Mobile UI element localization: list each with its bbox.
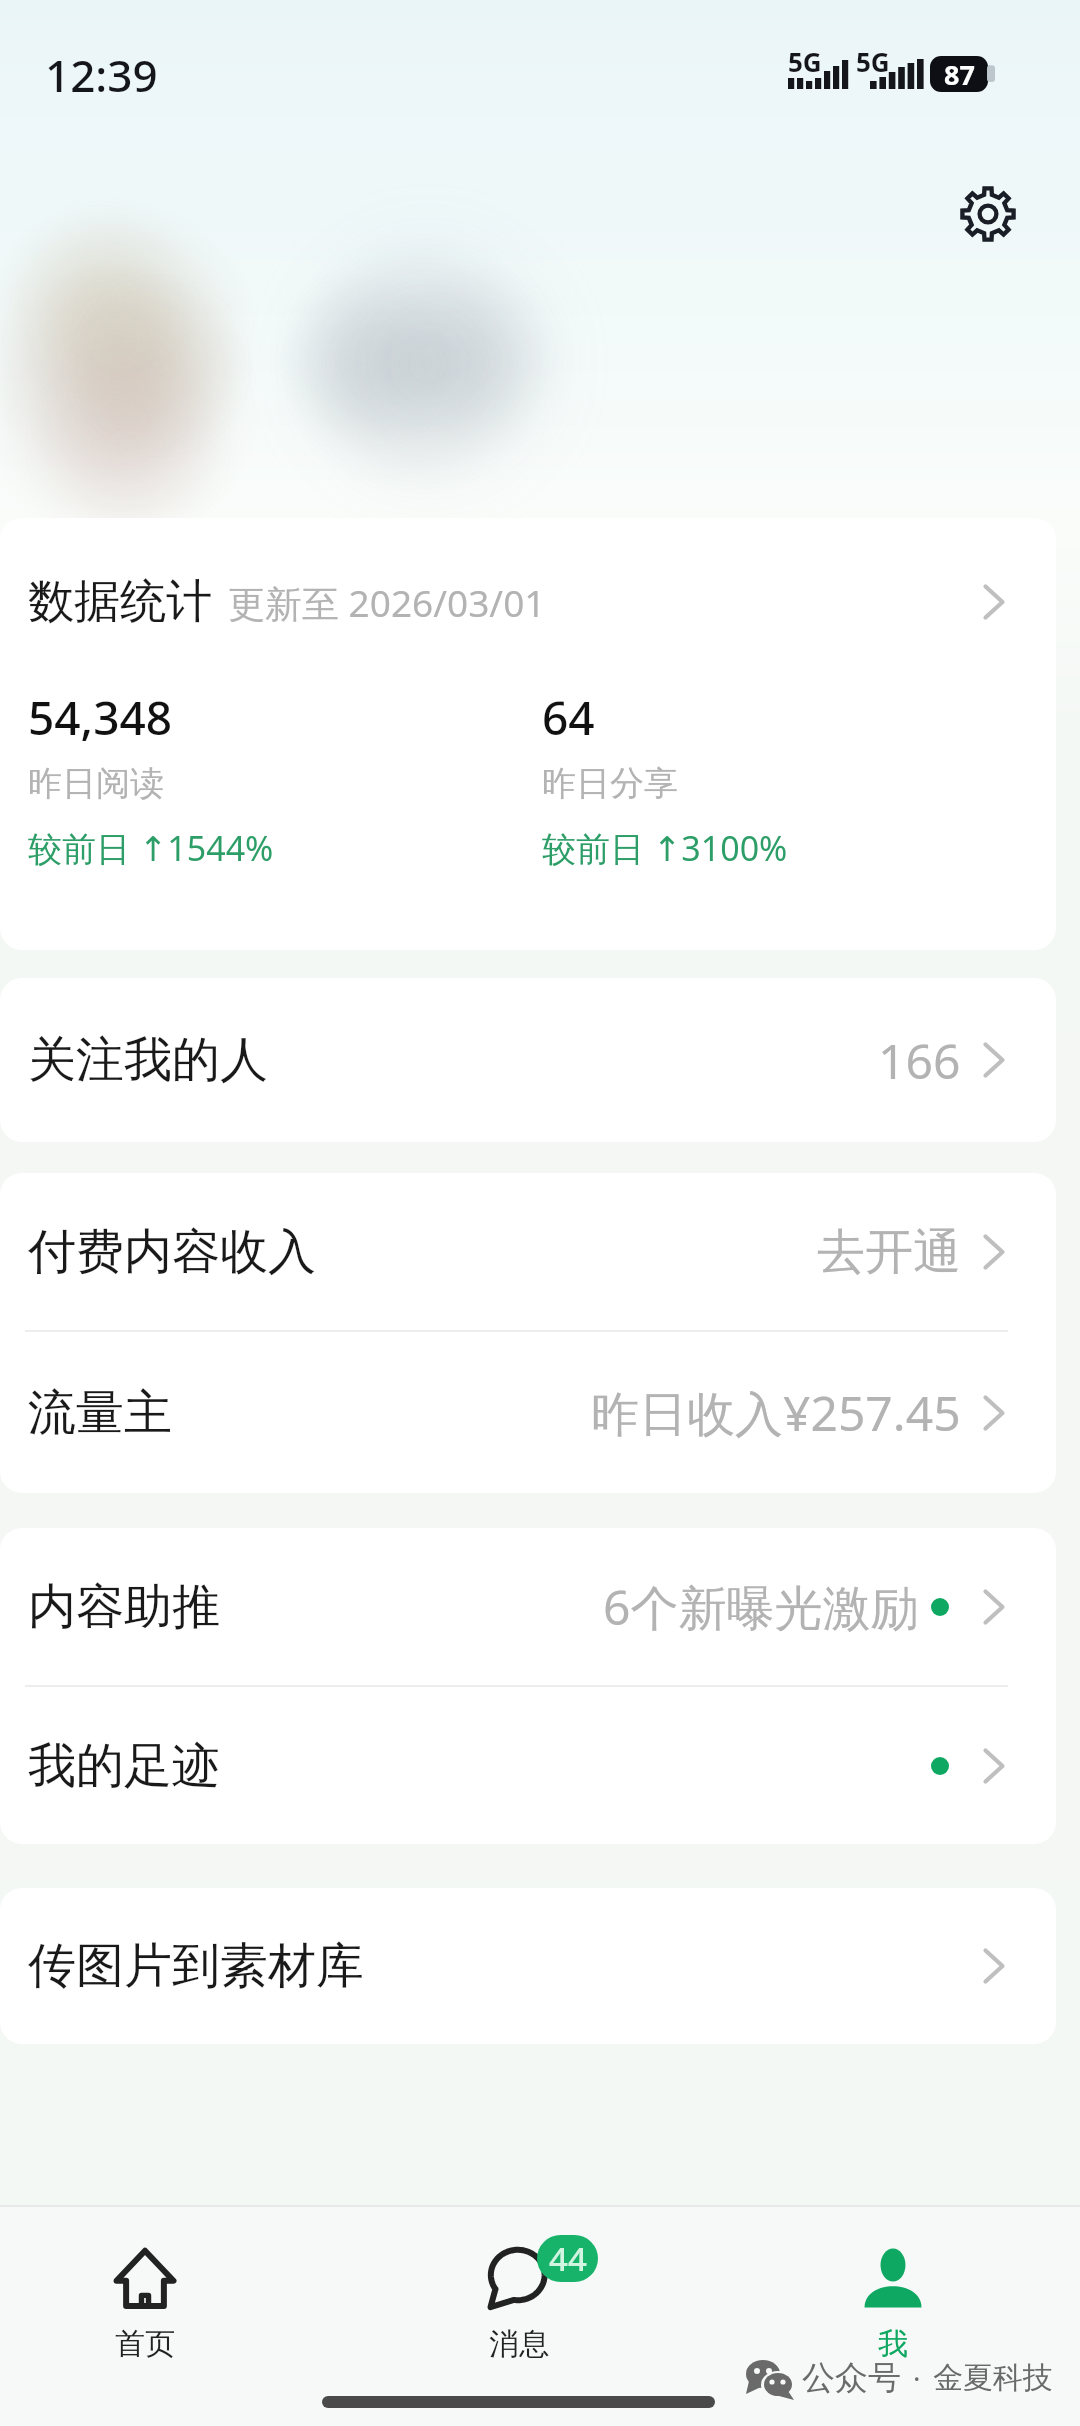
staticText: 付费内容收入 [28,1222,316,1282]
staticText: 传图片到素材库 [28,1936,364,1996]
staticText: 关注我的人 [28,1030,268,1090]
staticText: 12:39 [45,45,158,105]
button[interactable]: 流量主 [0,1332,1056,1493]
staticText: 去开通 [817,1222,961,1282]
staticText: 昨日分享 [542,762,678,805]
staticText: · [913,2359,921,2397]
staticText: 较前日 ↑1544% [28,825,274,871]
button[interactable]: 我 [803,2207,983,2426]
staticText: 昨日阅读 [28,762,164,805]
staticText: 我 [878,2325,908,2363]
staticText: 64 [542,686,595,749]
button[interactable]: 我的足迹 [0,1687,1056,1844]
staticText: 更新至 2026/03/01 [228,577,546,628]
staticText: 昨日收入¥257.45 [591,1380,961,1446]
button[interactable]: 传图片到素材库 [0,1888,1056,2044]
button[interactable]: 首页 [55,2207,235,2426]
staticText: 较前日 ↑3100% [542,825,788,871]
button[interactable]: 付费内容收入 [0,1173,1056,1330]
staticText: 数据统计 [28,573,212,631]
staticText: 166 [878,1028,961,1093]
staticText: 我的足迹 [28,1736,220,1796]
staticText: 首页 [115,2325,175,2363]
staticText: 金夏科技 [933,2359,1053,2397]
button[interactable]: 关注我的人 [0,978,1056,1142]
staticText: 内容助推 [28,1577,220,1637]
staticText: 87 [944,56,975,92]
staticText: 公众号 [802,2357,901,2399]
staticText: 5G [788,44,822,79]
button[interactable]: 内容助推 [0,1528,1056,1685]
button[interactable]: 数据统计 [0,518,1056,686]
button[interactable]: 44 [429,2207,609,2426]
staticText: 44 [549,2236,587,2281]
staticText: 消息 [489,2325,549,2363]
staticText: 5G [856,44,890,79]
button[interactable]: Settings [952,178,1024,250]
staticText: 54,348 [28,686,173,749]
staticText: 流量主 [28,1383,172,1443]
staticText: 6个新曝光激励 [603,1574,919,1640]
